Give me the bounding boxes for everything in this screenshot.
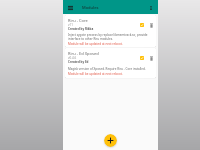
staticText: Inject zygote process by replace libmemt… [68,33,155,41]
staticText: Riru - Core [68,18,88,23]
button[interactable]: Toggle module [138,21,146,29]
staticText: Magisk version of Xposed. Require Riru -… [68,67,155,71]
button[interactable]: Delete module [147,54,155,62]
button[interactable]: Delete module [147,21,155,29]
staticText: v0.4.6 [68,56,77,60]
button[interactable]: Toggle module [138,54,146,62]
staticText: Modules [82,5,99,10]
button[interactable]: Riru - Core [65,15,156,47]
staticText: Module will be updated at next reboot. [68,72,123,76]
staticText: Riru - Ed Xposed [68,51,99,56]
staticText: Created by Rikka [68,27,94,31]
staticText: Module will be updated at next reboot. [68,42,123,46]
button[interactable]: Add module [104,134,117,147]
button[interactable]: Open navigation menu [66,3,75,12]
staticText: v11 [68,23,73,27]
button[interactable]: Riru - Ed Xposed [65,48,156,78]
staticText: Created by Ed [68,60,89,64]
button[interactable]: More options [146,3,155,12]
